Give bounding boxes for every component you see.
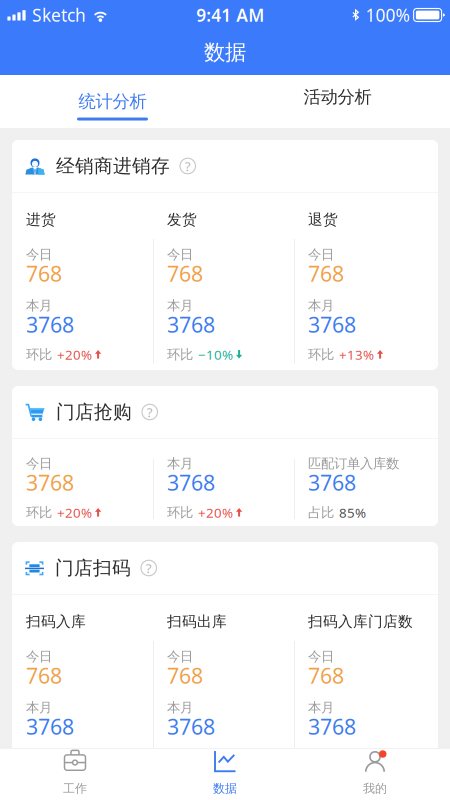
staticText: 100% [366,3,410,26]
staticText: 本月 [308,297,334,314]
staticText: 768 [308,661,344,690]
staticText: +20% [57,748,92,765]
staticText: 768 [26,661,62,690]
staticText: 环比 [167,346,193,363]
staticText: 本月 [308,699,334,716]
staticText: 匹配订单入库数 [308,455,399,472]
staticText: 活动分析 [303,86,371,108]
staticText: 今日 [308,246,334,263]
staticText: ? [185,157,191,175]
staticText: 85% [339,504,366,521]
staticText: 今日 [167,648,193,665]
staticText: 环比 [308,346,334,363]
staticText: 3768 [308,468,356,497]
staticText: 3768 [26,310,74,339]
staticText: 扫码入库门店数 [308,612,413,630]
staticText: 今日 [167,246,193,263]
staticText: 扫码入库 [26,612,86,630]
staticText: 今日 [308,648,334,665]
staticText: 环比 [167,504,193,521]
button[interactable]: 我的 [300,748,450,800]
staticText: 环比 [26,346,52,363]
staticText: Sketch [32,3,86,26]
staticText: 3768 [308,310,356,339]
staticText: 768 [167,661,203,690]
staticText: 3768 [26,468,74,497]
staticText: +20% [339,748,374,765]
button[interactable]: 数据 [150,748,300,800]
staticText: 环比 [308,748,334,765]
staticText: 我的 [363,781,387,796]
staticText: 今日 [26,455,52,472]
staticText: 768 [308,259,344,288]
staticText: +20% [57,346,92,363]
staticText: 发货 [167,210,197,228]
staticText: 数据 [204,39,246,66]
button[interactable]: 活动分析 [225,75,450,128]
staticText: 3768 [167,310,215,339]
staticText: ? [147,403,153,421]
staticText: +20% [57,504,92,521]
staticText: 768 [167,259,203,288]
staticText: +13% [339,346,374,363]
staticText: 3768 [167,712,215,741]
staticText: 扫码出库 [167,612,227,630]
staticText: 门店抢购 [56,400,132,423]
button[interactable]: 统计分析 [0,75,225,128]
staticText: 768 [26,259,62,288]
staticText: 3768 [167,468,215,497]
staticText: 环比 [26,748,52,765]
staticText: 本月 [167,297,193,314]
staticText: −10% [198,346,233,363]
staticText: 9:41 AM [196,3,264,26]
staticText: 环比 [26,504,52,521]
staticText: 数据 [213,781,237,796]
staticText: +20% [198,504,233,521]
staticText: 本月 [26,297,52,314]
staticText: 3768 [26,712,74,741]
button[interactable]: 工作 [0,748,150,800]
staticText: 占比 [308,504,334,521]
staticText: 工作 [63,781,87,796]
staticText: 本月 [167,699,193,716]
staticText: 经销商进销存 [56,154,170,177]
staticText: ? [146,559,152,577]
staticText: 门店扫码 [55,556,131,579]
staticText: 环比 [167,748,193,765]
staticText: 本月 [167,455,193,472]
staticText: 退货 [308,210,338,228]
staticText: 3768 [308,712,356,741]
staticText: 今日 [26,648,52,665]
staticText: 进货 [26,210,56,228]
staticText: 本月 [26,699,52,716]
staticText: +20% [198,748,233,765]
staticText: 今日 [26,246,52,263]
staticText: 统计分析 [78,91,146,112]
